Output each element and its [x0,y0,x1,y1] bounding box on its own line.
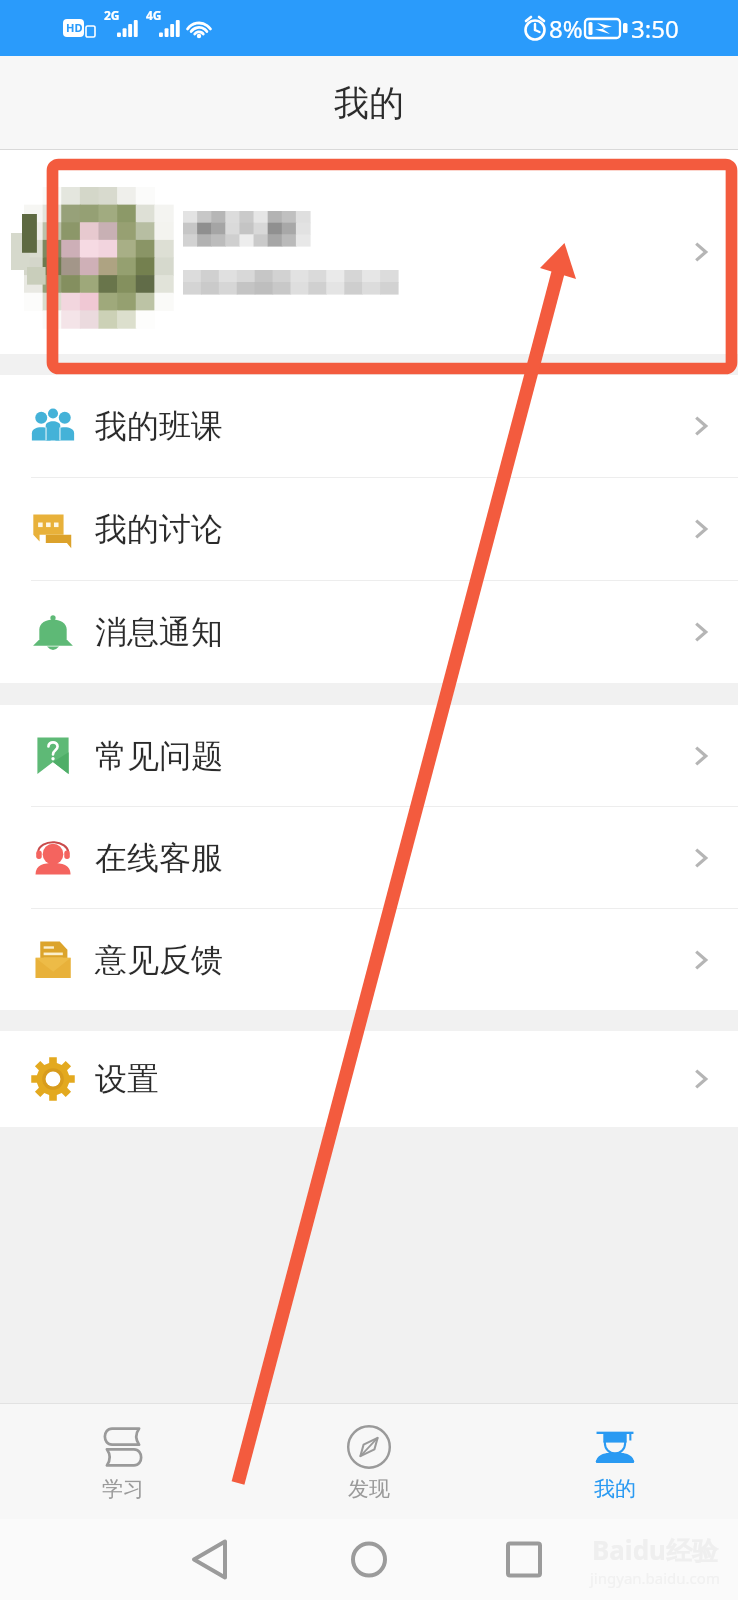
button[interactable]: 发现 [246,1404,492,1519]
button[interactable]: 我的班课 [0,375,738,477]
button[interactable]: 常见问题 [0,705,738,806]
staticText: 我的班课 [95,406,223,446]
staticText: 设置 [95,1059,159,1099]
button[interactable]: Recent apps [484,1519,565,1600]
staticText: 我的讨论 [95,509,223,549]
button[interactable]: Back [169,1519,250,1600]
button[interactable]: 学习 [0,1404,246,1519]
button[interactable]: 设置 [0,1031,738,1127]
staticText: 消息通知 [95,612,223,652]
staticText: jingyan.baidu.com [590,1568,720,1588]
button[interactable]: Home [329,1519,410,1600]
button[interactable]: 在线客服 [0,807,738,908]
staticText: 2G [104,7,120,23]
staticText: HD [66,20,83,35]
button[interactable]: 个人资料 [0,150,738,354]
staticText: 4G [146,7,162,23]
staticText: 8% [549,12,583,45]
staticText: 发现 [348,1476,390,1502]
button[interactable]: 我的讨论 [0,478,738,580]
staticText: Baidu经验 [592,1532,718,1568]
staticText: 3:50 [631,12,679,45]
staticText: 我的 [334,81,404,125]
staticText: 意见反馈 [95,940,223,980]
button[interactable]: 消息通知 [0,581,738,683]
staticText: 学习 [102,1476,144,1502]
button[interactable]: 意见反馈 [0,909,738,1010]
staticText: 在线客服 [95,838,223,878]
staticText: 常见问题 [95,736,223,776]
button[interactable]: 我的 [492,1404,738,1519]
staticText: 我的 [594,1476,636,1502]
